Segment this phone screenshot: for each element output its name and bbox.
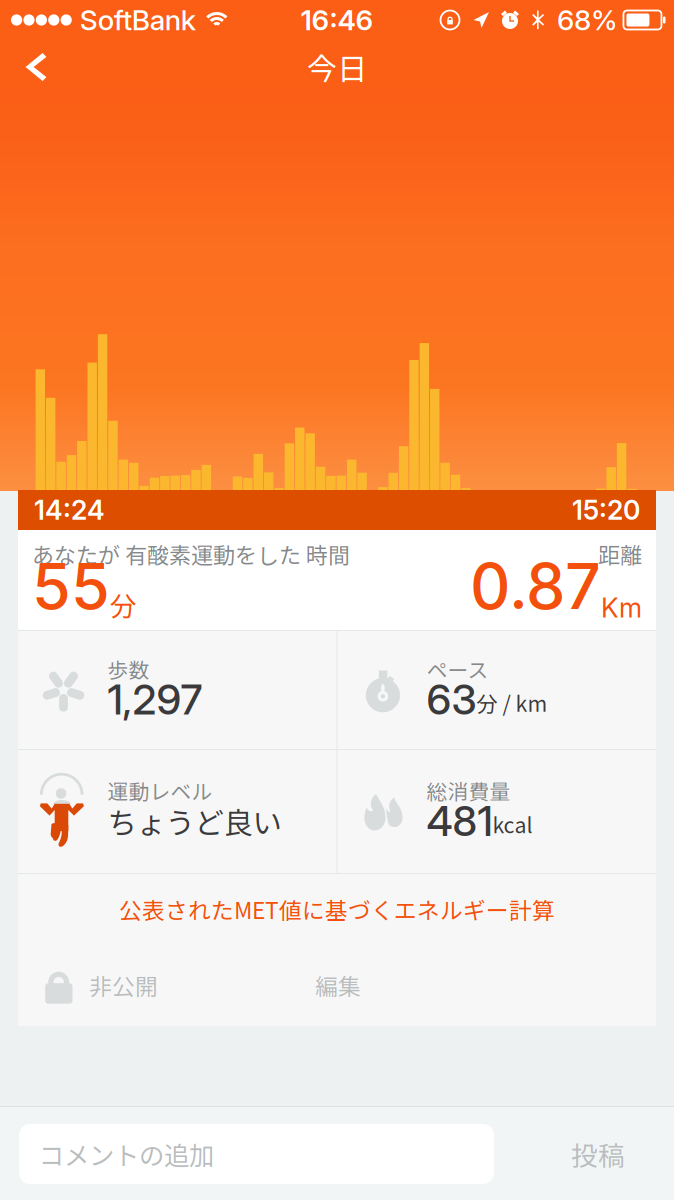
staticText: 公表されたMET値に基づくエネルギー計算 bbox=[119, 893, 555, 925]
button[interactable]: コメントの追加 bbox=[19, 1124, 494, 1184]
staticText: 今日 bbox=[307, 45, 367, 89]
staticText: コメントの追加 bbox=[39, 1136, 214, 1172]
staticText: 55 bbox=[32, 548, 110, 624]
staticText: SoftBank bbox=[80, 3, 196, 37]
staticText: ペース bbox=[426, 654, 488, 684]
staticText: 非公開 bbox=[89, 969, 158, 1001]
staticText: あなたが 有酸素運動をした 時間 bbox=[32, 538, 350, 570]
staticText: 15:20 bbox=[572, 494, 640, 526]
staticText: 総消費量 bbox=[426, 775, 510, 805]
staticText: 投稿 bbox=[571, 1135, 625, 1173]
staticText: 1,297 bbox=[107, 674, 202, 724]
button[interactable]: 投稿 bbox=[518, 1124, 674, 1184]
staticText: kcal bbox=[492, 809, 532, 839]
staticText: 分 / km bbox=[476, 687, 547, 718]
button[interactable]: 編集 bbox=[278, 944, 398, 1026]
staticText: 分 bbox=[110, 585, 137, 624]
staticText: 481 bbox=[426, 796, 492, 846]
staticText: ちょうど良い bbox=[107, 800, 281, 842]
staticText: 14:24 bbox=[34, 494, 105, 526]
staticText: 距離 bbox=[598, 538, 642, 570]
staticText: 63 bbox=[426, 674, 476, 724]
staticText: Km bbox=[601, 592, 642, 624]
staticText: 運動レベル bbox=[107, 775, 212, 805]
staticText: 0.87 bbox=[470, 548, 601, 624]
staticText: 編集 bbox=[315, 969, 361, 1001]
staticText: 歩数 bbox=[107, 654, 149, 684]
button[interactable]: 非公開 bbox=[44, 944, 278, 1026]
staticText: 68% bbox=[557, 3, 618, 37]
button[interactable]: 公表されたMET値に基づくエネルギー計算 bbox=[18, 874, 656, 944]
button[interactable]: Back bbox=[0, 42, 72, 92]
staticText: 16:46 bbox=[300, 3, 373, 37]
